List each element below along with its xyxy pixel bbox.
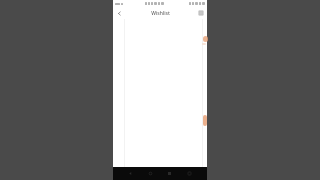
button[interactable]: Wishlist item	[203, 36, 208, 42]
button[interactable]: Back	[113, 7, 125, 19]
button[interactable]: Screenshot	[183, 167, 196, 180]
button[interactable]: Wishlist item	[203, 115, 207, 126]
staticText: Wishlist	[151, 10, 170, 17]
button[interactable]: More options	[195, 7, 207, 19]
button[interactable]: Recent apps	[163, 167, 176, 180]
button[interactable]: Home	[144, 167, 157, 180]
